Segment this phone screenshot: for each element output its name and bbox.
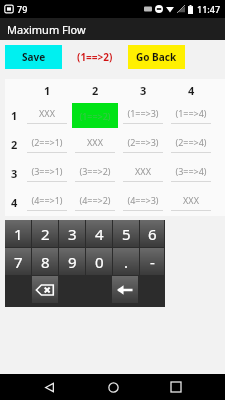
staticText: (4==>2) (79, 194, 111, 206)
button[interactable]: (4==>3) (119, 188, 167, 216)
button[interactable]: (2==>4) (167, 130, 215, 159)
staticText: XXX (87, 136, 103, 148)
button[interactable]: Save (5, 45, 62, 69)
staticText: 4 (11, 195, 18, 210)
staticText: 2 (41, 224, 50, 244)
button[interactable]: (2==>1) (23, 130, 71, 159)
button[interactable]: 8 (32, 248, 58, 275)
button[interactable]: 1 (5, 220, 31, 247)
staticText: (4==>3) (127, 194, 159, 206)
staticText: 79 (17, 3, 28, 15)
button[interactable]: XXX (167, 188, 215, 216)
staticText: . (124, 252, 129, 272)
button[interactable]: Backspace (32, 276, 58, 303)
button[interactable]: Recents (161, 374, 191, 400)
staticText: (1==>2) (77, 50, 113, 64)
staticText: (2==>1) (31, 136, 63, 148)
staticText: 6 (148, 224, 157, 244)
button[interactable]: 2 (32, 220, 58, 247)
button[interactable]: Enter (112, 276, 138, 303)
staticText: 9 (68, 252, 77, 272)
button[interactable]: (4==>2) (71, 188, 119, 216)
button[interactable]: (1==>2) (71, 101, 119, 130)
staticText: Go Back (136, 50, 177, 64)
staticText: 0 (95, 252, 104, 272)
staticText: (3==>1) (31, 165, 63, 177)
staticText: (1==>2) (79, 110, 111, 122)
button[interactable]: (1==>4) (167, 101, 215, 130)
staticText: Save (22, 50, 46, 64)
button[interactable]: (3==>2) (71, 159, 119, 188)
button[interactable]: 3 (59, 220, 85, 247)
staticText: (3==>4) (175, 165, 207, 177)
button[interactable]: Back (34, 374, 64, 400)
button[interactable]: 6 (140, 220, 164, 247)
button[interactable]: Home (98, 374, 128, 400)
button[interactable]: (1==>3) (119, 101, 167, 130)
staticText: Maximum Flow (7, 22, 86, 37)
staticText: (1==>4) (175, 107, 207, 119)
staticText: 2 (11, 137, 18, 152)
staticText: (2==>3) (127, 136, 159, 148)
staticText: 5 (122, 224, 131, 244)
staticText: XXX (39, 107, 55, 119)
button[interactable]: 0 (86, 248, 112, 275)
staticText: 4 (95, 224, 104, 244)
staticText: (3==>2) (79, 165, 111, 177)
staticText: XXX (183, 194, 199, 206)
button[interactable]: (2==>3) (119, 130, 167, 159)
staticText: (4==>1) (31, 194, 63, 206)
staticText: - (150, 252, 155, 272)
button[interactable]: - (140, 248, 164, 275)
button[interactable]: 5 (113, 220, 139, 247)
staticText: 7 (14, 252, 23, 272)
staticText: 3 (11, 166, 18, 181)
staticText: 11:47 (197, 3, 221, 15)
staticText: 1 (14, 224, 23, 244)
staticText: XXX (135, 165, 151, 177)
staticText: 4 (188, 83, 195, 98)
button[interactable]: (3==>1) (23, 159, 71, 188)
button[interactable]: 9 (59, 248, 85, 275)
staticText: 1 (44, 83, 51, 98)
staticText: 3 (140, 83, 147, 98)
button[interactable]: XXX (71, 130, 119, 159)
button[interactable]: XXX (119, 159, 167, 188)
button[interactable]: (3==>4) (167, 159, 215, 188)
staticText: 8 (41, 252, 50, 272)
staticText: 3 (68, 224, 77, 244)
button[interactable]: 7 (5, 248, 31, 275)
staticText: (1==>3) (127, 107, 159, 119)
button[interactable]: XXX (23, 101, 71, 130)
staticText: (2==>4) (175, 136, 207, 148)
staticText: 2 (92, 83, 99, 98)
button[interactable]: (4==>1) (23, 188, 71, 216)
button[interactable]: 4 (86, 220, 112, 247)
button[interactable]: . (113, 248, 139, 275)
button[interactable]: Go Back (128, 45, 185, 69)
staticText: 1 (11, 108, 18, 123)
